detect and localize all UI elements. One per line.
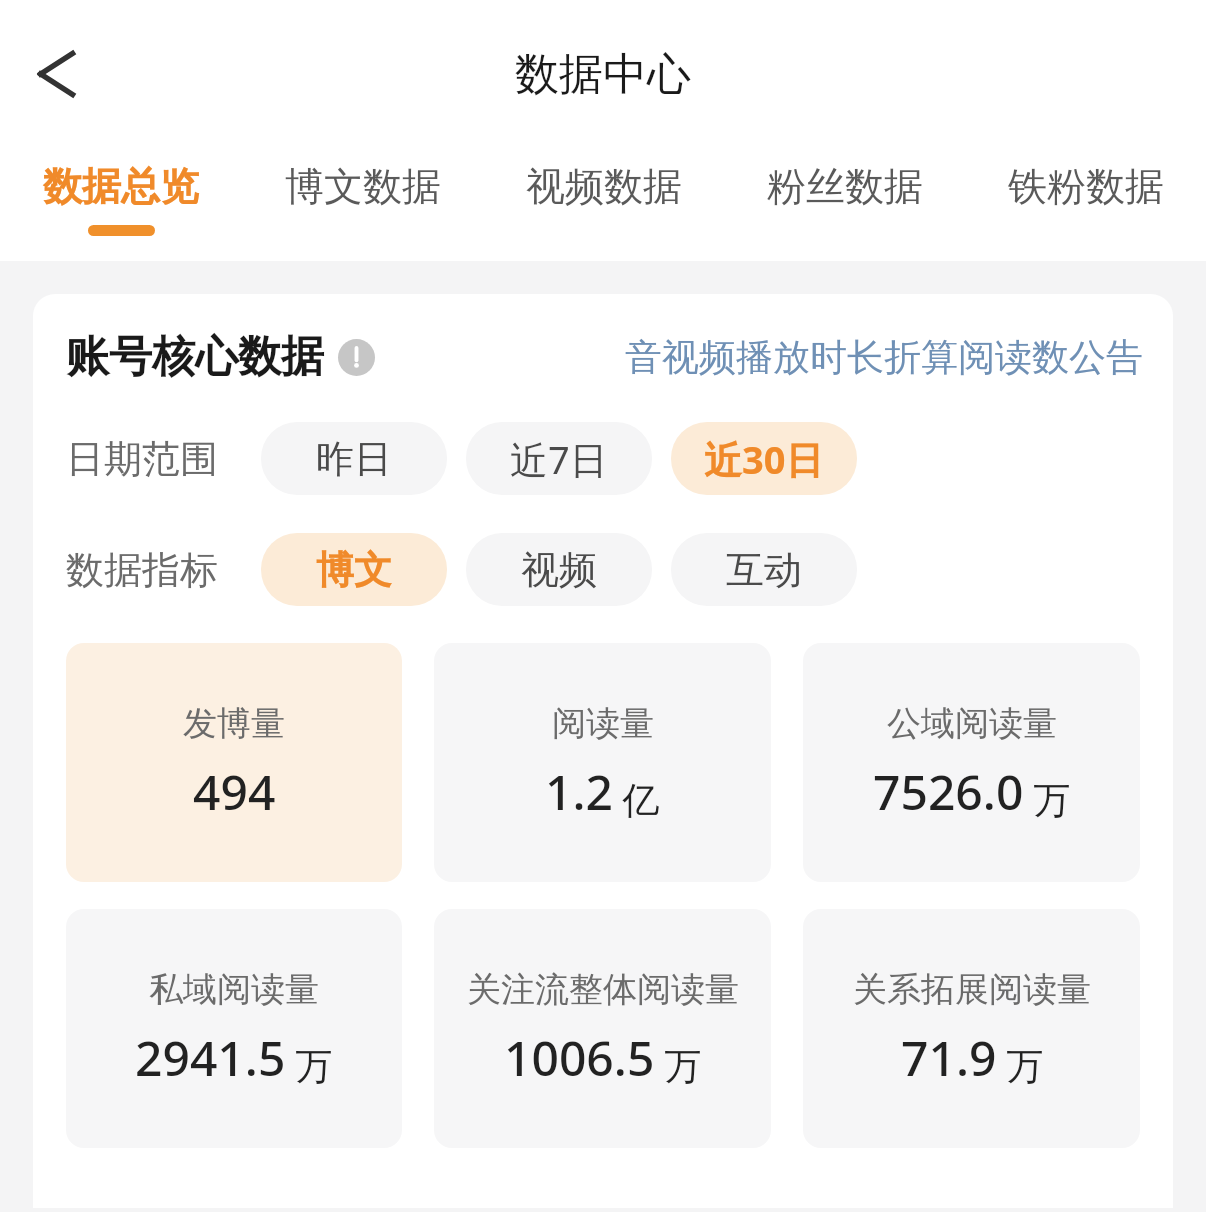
button[interactable]: 关系拓展阅读量: [803, 909, 1140, 1148]
staticText: 视频数据: [526, 162, 682, 211]
staticText: 粉丝数据: [767, 162, 923, 211]
button[interactable]: 博文数据: [242, 148, 483, 261]
staticText: 关系拓展阅读量: [853, 968, 1091, 1011]
staticText: 公域阅读量: [887, 702, 1057, 745]
staticText: 音视频播放时长折算阅读数公告: [625, 334, 1143, 381]
staticText: 关注流整体阅读量: [467, 968, 739, 1011]
button[interactable]: 数据总览: [0, 148, 242, 261]
staticText: 494: [193, 759, 276, 824]
staticText: 2941.5: [135, 1025, 286, 1090]
staticText: 亿: [613, 773, 660, 824]
button[interactable]: 近7日: [466, 422, 652, 495]
button[interactable]: 关注流整体阅读量: [434, 909, 771, 1148]
staticText: 数据指标: [66, 546, 218, 594]
button[interactable]: 互动: [671, 533, 857, 606]
staticText: 万: [655, 1039, 702, 1090]
staticText: 71.9: [901, 1025, 997, 1090]
button[interactable]: 粉丝数据: [724, 148, 965, 261]
button[interactable]: 视频数据: [483, 148, 724, 261]
staticText: 近30日: [704, 433, 824, 485]
staticText: 1.2: [545, 759, 613, 824]
staticText: 发博量: [183, 702, 285, 745]
button[interactable]: Back: [14, 36, 90, 112]
staticText: 数据总览: [43, 162, 199, 211]
staticText: 视频: [521, 546, 597, 594]
button[interactable]: 视频: [466, 533, 652, 606]
staticText: 账号核心数据: [66, 330, 324, 384]
staticText: 万: [286, 1039, 333, 1090]
staticText: 私域阅读量: [149, 968, 319, 1011]
button[interactable]: 铁粉数据: [965, 148, 1206, 261]
staticText: 昨日: [316, 435, 392, 483]
staticText: 博文数据: [285, 162, 441, 211]
staticText: 7526.0: [873, 759, 1024, 824]
staticText: 万: [997, 1039, 1044, 1090]
button[interactable]: 公域阅读量: [803, 643, 1140, 882]
button[interactable]: 博文: [261, 533, 447, 606]
button[interactable]: 私域阅读量: [66, 909, 402, 1148]
staticText: 近7日: [510, 433, 608, 485]
staticText: 日期范围: [66, 435, 218, 483]
staticText: 博文: [316, 546, 392, 594]
button[interactable]: 说明: [338, 339, 375, 376]
button[interactable]: 音视频播放时长折算阅读数公告: [625, 334, 1143, 381]
staticText: 1006.5: [504, 1025, 655, 1090]
staticText: 互动: [726, 546, 802, 594]
staticText: 数据中心: [515, 47, 691, 102]
staticText: 万: [1024, 773, 1071, 824]
button[interactable]: 昨日: [261, 422, 447, 495]
button[interactable]: 阅读量: [434, 643, 771, 882]
staticText: 阅读量: [552, 702, 654, 745]
staticText: 铁粉数据: [1008, 162, 1164, 211]
button[interactable]: 近30日: [671, 422, 857, 495]
button[interactable]: 发博量: [66, 643, 402, 882]
